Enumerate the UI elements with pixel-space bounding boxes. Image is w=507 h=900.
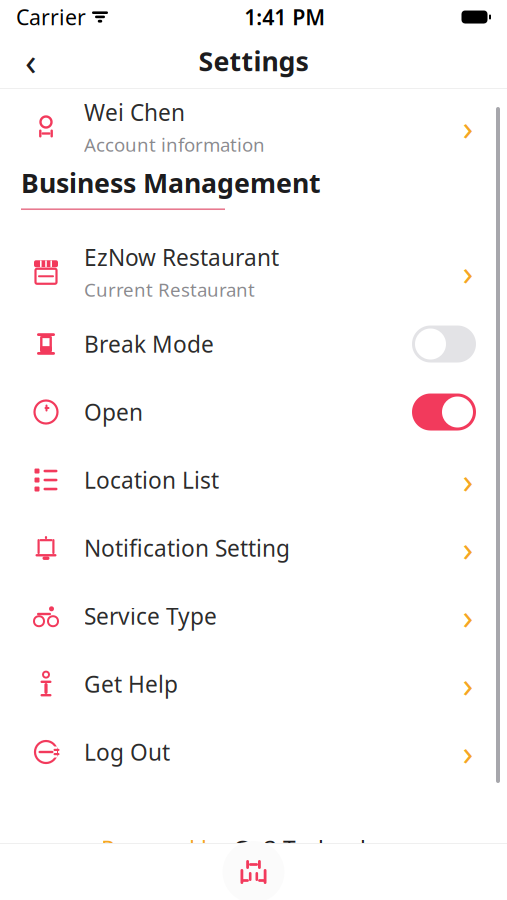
staticText: Powered by	[101, 834, 226, 864]
staticText: Account information	[84, 132, 265, 157]
button[interactable]: Service Type	[0, 582, 507, 650]
staticText: Version 2.24.3	[178, 882, 328, 900]
staticText: ›	[462, 104, 473, 150]
staticText: 1:41 PM	[244, 3, 325, 31]
button[interactable]: Break Mode	[0, 310, 507, 378]
staticText: ›	[462, 525, 473, 571]
staticText: Go3 Technology	[233, 834, 406, 864]
staticText: ›	[462, 593, 473, 639]
staticText: ›	[462, 457, 473, 503]
staticText: Carrier	[16, 3, 86, 31]
button[interactable]: Wei Chen	[0, 89, 507, 165]
staticText: Wei Chen	[84, 97, 185, 127]
staticText: ›	[462, 249, 473, 295]
staticText: Settings	[198, 43, 308, 79]
staticText: Get Help	[84, 669, 178, 699]
staticText: Break Mode	[84, 329, 214, 359]
button[interactable]: Location List	[0, 446, 507, 514]
staticText: Current Restaurant	[84, 277, 255, 302]
button[interactable]: Get Help	[0, 650, 507, 718]
staticText: Business Management	[21, 165, 321, 200]
staticText: Location List	[84, 465, 219, 495]
staticText: ›	[462, 729, 473, 775]
button[interactable]: Home	[213, 844, 293, 900]
staticText: EzNow Restaurant	[84, 242, 279, 272]
staticText: Log Out	[84, 737, 170, 767]
button[interactable]: Log Out	[0, 718, 507, 786]
staticText: ›	[462, 661, 473, 707]
button[interactable]: EzNow Restaurant	[0, 234, 507, 310]
button[interactable]: Notification Setting	[0, 514, 507, 582]
staticText: Open	[84, 397, 143, 427]
staticText: Service Type	[84, 601, 217, 631]
staticText: ‹	[25, 36, 37, 86]
button[interactable]: Open	[0, 378, 507, 446]
staticText: Notification Setting	[84, 533, 290, 563]
button[interactable]: Back	[8, 38, 54, 84]
